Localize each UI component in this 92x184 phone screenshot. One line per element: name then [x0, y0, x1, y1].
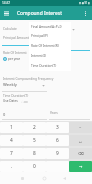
staticText: 6 — [56, 137, 59, 144]
button[interactable]: 6 — [46, 135, 69, 146]
staticText: ␣ — [79, 138, 82, 143]
staticText: 3 — [56, 124, 59, 131]
staticText: 2 — [33, 124, 36, 131]
button[interactable]: Final Amount(A=P+I) — [29, 22, 71, 31]
button[interactable]: 7 — [0, 148, 23, 159]
button[interactable]: More options — [80, 8, 91, 19]
button[interactable]: Principal(P) — [29, 31, 71, 41]
button[interactable]: Interest(I) — [29, 51, 71, 61]
staticText: 7 — [10, 150, 13, 157]
staticText: 8 — [33, 150, 36, 157]
staticText: 14:37 — [2, 1, 11, 5]
button[interactable]: 8 — [23, 148, 46, 159]
staticText: → — [79, 164, 83, 169]
button[interactable]: 9 — [46, 148, 69, 159]
button[interactable]: 4 — [0, 135, 23, 146]
staticText: 9 — [56, 150, 59, 157]
staticText: 1 — [10, 124, 13, 131]
button[interactable]: Calculate selector — [69, 25, 77, 33]
staticText: Interest(I) — [31, 54, 46, 58]
staticText: Principal Amount — [3, 36, 29, 40]
button[interactable]: Weekly — [2, 82, 46, 88]
button[interactable]: per year — [2, 56, 22, 62]
staticText: ▼ ● 91 ▮ — [79, 1, 90, 5]
staticText: − — [79, 125, 82, 130]
staticText: Calculate — [3, 27, 17, 31]
button[interactable]: 1 — [0, 122, 23, 133]
staticText: Rate Of Interest — [3, 51, 27, 55]
button[interactable]: 2 — [23, 122, 46, 133]
button[interactable]: ⌫ — [69, 148, 92, 159]
staticText: 0 — [3, 112, 6, 117]
button[interactable]: Time Duration(T) — [29, 61, 71, 71]
staticText: . — [11, 163, 13, 170]
staticText: per year — [8, 57, 21, 61]
staticText: Rate Of Interest(R) — [31, 44, 59, 48]
button[interactable]: 0 — [23, 161, 46, 172]
button[interactable]: . — [0, 161, 23, 172]
button[interactable]: Rate Of Interest(R) — [29, 41, 71, 51]
button[interactable]: Back — [59, 173, 69, 183]
staticText: Compound Interest — [17, 10, 62, 17]
button[interactable]: 3 — [46, 122, 69, 133]
button[interactable]: − — [69, 122, 92, 133]
button[interactable]: Use Dates — [2, 99, 28, 103]
staticText: Interest Compounding Frequency — [3, 77, 54, 81]
button[interactable]: → — [69, 161, 92, 172]
staticText: 0 — [33, 163, 36, 170]
button[interactable]: Home — [39, 173, 49, 183]
staticText: 5 — [33, 137, 36, 144]
button[interactable]: 5 — [23, 135, 46, 146]
staticText: Principal(P) — [31, 34, 48, 38]
button[interactable]: Recent apps — [17, 173, 27, 183]
button[interactable]: ␣ — [69, 135, 92, 146]
staticText: Years — [50, 111, 58, 115]
staticText: Weekly — [3, 82, 17, 88]
staticText: Final Amount(A=P+I) — [31, 25, 62, 29]
button[interactable]: Navigation menu — [1, 8, 12, 19]
staticText: Time Duration(T) — [31, 64, 57, 68]
staticText: 4 — [10, 137, 13, 144]
staticText: Time Duration(T) — [3, 94, 29, 98]
staticText: ⌫ — [78, 151, 84, 156]
staticText: Use Dates — [3, 99, 18, 103]
